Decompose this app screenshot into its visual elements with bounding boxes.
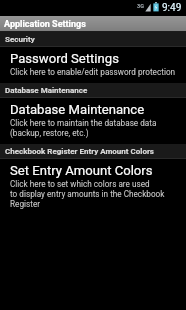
staticText: 3G: [137, 3, 144, 9]
staticText: Password Settings: [10, 51, 119, 66]
staticText: 9:49: [162, 2, 182, 14]
staticText: Click here to maintain the database data…: [10, 118, 157, 138]
staticText: Application Settings: [4, 19, 86, 30]
staticText: Checkbook Register Entry Amount Colors: [5, 147, 154, 156]
staticText: Click here to enable/edit password prote…: [10, 67, 176, 77]
staticText: Database Maintenance: [5, 86, 88, 95]
staticText: Security: [5, 35, 35, 44]
button[interactable]: Set Entry Amount Colors: [0, 159, 186, 215]
staticText: Click here to set which colors are used …: [10, 179, 165, 209]
staticText: Set Entry Amount Colors: [10, 163, 153, 178]
button[interactable]: Database Maintenance: [0, 98, 186, 144]
staticText: Database Maintenance: [10, 102, 145, 117]
button[interactable]: Password Settings: [0, 47, 186, 83]
